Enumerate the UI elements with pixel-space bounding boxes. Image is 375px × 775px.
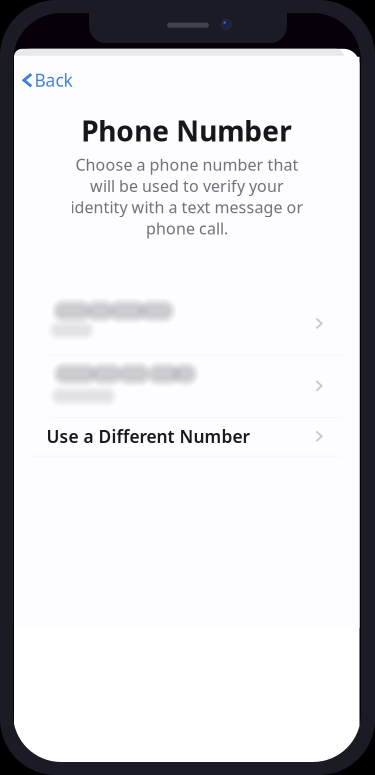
button[interactable] [32, 292, 342, 355]
button[interactable] [32, 355, 342, 417]
button[interactable]: Use a Different Number [32, 417, 342, 456]
staticText: Use a Different Number [47, 425, 251, 448]
staticText: Back [35, 68, 73, 91]
staticText: Choose a phone number that will be used … [70, 154, 303, 239]
staticText: Phone Number [81, 112, 292, 149]
button[interactable]: Back [18, 66, 76, 94]
